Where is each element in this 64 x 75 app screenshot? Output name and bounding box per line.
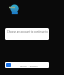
button[interactable]: Primary action <box>6 63 11 67</box>
staticText: Choose an account to continue to the exa… <box>7 30 49 34</box>
staticText: terms · privacy <box>20 64 38 67</box>
button[interactable]: Choose an account to continue to the exa… <box>5 28 49 40</box>
